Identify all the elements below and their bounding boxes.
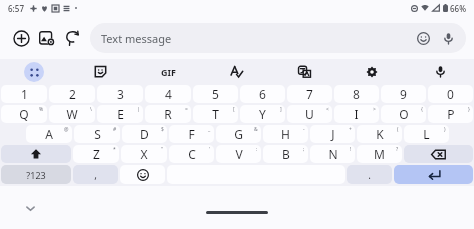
staticText: C	[188, 146, 196, 162]
staticText: E	[117, 106, 124, 122]
staticText: '	[209, 146, 211, 153]
button[interactable]: Text message	[90, 23, 466, 53]
staticText: O	[399, 106, 409, 122]
button[interactable]: I	[334, 105, 379, 123]
button[interactable]: 2	[49, 85, 95, 103]
button[interactable]: E	[97, 105, 143, 123]
button[interactable]: Emoji	[120, 165, 165, 184]
staticText: 2	[69, 86, 76, 102]
other: Shift	[1, 145, 71, 163]
button[interactable]: K	[357, 125, 402, 143]
button[interactable]: B	[263, 145, 308, 163]
button[interactable]: .	[347, 165, 392, 184]
other: Backspace	[404, 145, 473, 163]
staticText: +	[349, 126, 352, 133]
button[interactable]: X	[121, 145, 167, 163]
button[interactable]: Translate	[270, 59, 338, 84]
button[interactable]: V	[216, 145, 261, 163]
staticText: 66%	[450, 3, 466, 14]
button[interactable]: ?123	[1, 165, 71, 184]
button[interactable]: G	[216, 125, 261, 143]
button[interactable]: Emoji	[413, 28, 433, 48]
staticText: S	[94, 126, 101, 142]
button[interactable]: Backspace	[404, 145, 473, 163]
button[interactable]: 1	[1, 85, 47, 103]
button[interactable]: H	[263, 125, 308, 143]
button[interactable]: Z	[73, 145, 119, 163]
other: Emoji	[120, 165, 165, 184]
staticText: D	[140, 126, 149, 142]
button[interactable]: Y	[240, 105, 285, 123]
staticText: R	[164, 106, 172, 122]
staticText: F	[188, 126, 195, 142]
staticText: 1	[21, 86, 28, 102]
button[interactable]: ,	[73, 165, 118, 184]
button[interactable]: R	[145, 105, 191, 123]
staticText: 9	[400, 86, 407, 102]
button[interactable]: M	[357, 145, 402, 163]
staticText: ?	[396, 146, 399, 153]
button[interactable]: D	[122, 125, 167, 143]
staticText: 3	[117, 86, 124, 102]
staticText: N	[328, 146, 338, 162]
button[interactable]: 9	[381, 85, 426, 103]
staticText: |	[137, 106, 140, 113]
button[interactable]: 7	[287, 85, 332, 103]
button[interactable]: Q	[1, 105, 47, 123]
button[interactable]: U	[287, 105, 332, 123]
button[interactable]: S	[74, 125, 120, 143]
button[interactable]: Handwriting	[202, 59, 270, 84]
button[interactable]: Voice input	[438, 28, 458, 48]
button[interactable]: T	[193, 105, 238, 123]
button[interactable]: N	[310, 145, 355, 163]
button[interactable]: P	[428, 105, 473, 123]
staticText: 8	[353, 86, 360, 102]
button[interactable]: Hide keyboard	[22, 200, 38, 216]
staticText: Q	[19, 106, 29, 122]
button[interactable]: C	[169, 145, 214, 163]
staticText: }	[468, 106, 470, 113]
button[interactable]: O	[381, 105, 426, 123]
button[interactable]: Quick reply	[60, 25, 86, 51]
staticText: X	[140, 146, 148, 162]
staticText: GIF	[161, 66, 176, 78]
staticText: {	[421, 106, 423, 113]
button[interactable]: 5	[193, 85, 238, 103]
button[interactable]: Gallery	[34, 25, 60, 51]
staticText: 0	[447, 86, 454, 102]
staticText: -	[303, 126, 305, 133]
button[interactable]: 4	[145, 85, 191, 103]
button[interactable]: W	[49, 105, 95, 123]
staticText: L	[423, 126, 430, 142]
staticText: A	[45, 126, 53, 142]
staticText: 5	[212, 86, 219, 102]
button[interactable]: Settings	[338, 59, 406, 84]
staticText: W	[66, 106, 78, 122]
button[interactable]: Enter	[394, 165, 473, 184]
staticText: [	[233, 106, 235, 113]
staticText: H	[281, 126, 290, 142]
staticText: (	[397, 126, 399, 133]
button[interactable]: Toolbar	[24, 62, 44, 82]
button[interactable]: Voice typing	[406, 59, 474, 84]
button[interactable]: J	[310, 125, 355, 143]
button[interactable]: GIF	[134, 59, 202, 84]
button[interactable]: Stickers	[67, 59, 134, 84]
button[interactable]: L	[404, 125, 449, 143]
button[interactable]: 8	[334, 85, 379, 103]
staticText: M	[374, 146, 385, 162]
button[interactable]: 0	[428, 85, 473, 103]
staticText: *	[113, 146, 116, 153]
staticText: P	[447, 106, 455, 122]
button[interactable]: Add attachment	[8, 25, 34, 51]
button[interactable]: Shift	[1, 145, 71, 163]
button[interactable]: A	[26, 125, 72, 143]
other: Enter	[394, 165, 473, 184]
staticText: !	[350, 146, 352, 153]
button[interactable]: 6	[240, 85, 285, 103]
button[interactable]: F	[169, 125, 214, 143]
button[interactable]: 3	[97, 85, 143, 103]
staticText: $	[161, 126, 164, 133]
